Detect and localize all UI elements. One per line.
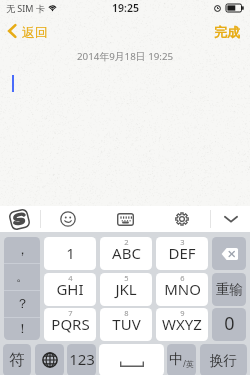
button[interactable]: [99, 344, 164, 375]
button[interactable]: 1: [44, 237, 96, 270]
button[interactable]: Sogou input method: [5, 206, 33, 232]
staticText: ！: [16, 320, 29, 336]
staticText: /英: [183, 358, 194, 369]
button[interactable]: 完成: [204, 23, 250, 39]
staticText: TUV: [112, 314, 141, 334]
button[interactable]: 。: [4, 264, 40, 290]
button[interactable]: Settings: [170, 207, 194, 231]
button[interactable]: 重输: [212, 273, 246, 306]
button[interactable]: 3: [156, 237, 208, 270]
button[interactable]: 中: [167, 344, 196, 375]
button[interactable]: ，: [4, 237, 40, 263]
button[interactable]: 0: [212, 308, 246, 341]
button[interactable]: Hide keyboard: [219, 207, 243, 231]
button[interactable]: 5: [100, 273, 152, 306]
staticText: 0: [224, 311, 235, 336]
staticText: 3: [180, 237, 185, 247]
staticText: 无 SIM 卡: [6, 2, 45, 14]
staticText: DEF: [168, 243, 196, 263]
staticText: 7: [68, 308, 73, 318]
button[interactable]: 7: [44, 308, 96, 341]
staticText: ，: [16, 241, 29, 257]
button[interactable]: Delete: [212, 237, 246, 270]
button[interactable]: 符: [3, 344, 31, 375]
button[interactable]: 123: [67, 344, 96, 375]
staticText: 2014年9月18日 19:25: [77, 50, 174, 63]
staticText: 完成: [214, 24, 240, 40]
button[interactable]: Switch language: [35, 344, 64, 375]
staticText: 5: [124, 273, 129, 283]
button[interactable]: 换行: [200, 344, 247, 375]
button[interactable]: 4: [44, 273, 96, 306]
button[interactable]: 返回: [0, 23, 56, 39]
staticText: 19:25: [112, 1, 139, 15]
staticText: PQRS: [51, 314, 90, 334]
staticText: 返回: [22, 24, 48, 40]
staticText: GHI: [56, 279, 84, 299]
staticText: MNO: [164, 279, 201, 299]
staticText: 符: [9, 350, 25, 370]
staticText: 2: [124, 237, 129, 247]
staticText: 1: [66, 243, 75, 263]
button[interactable]: 8: [100, 308, 152, 341]
staticText: 6: [180, 273, 185, 283]
staticText: 中: [169, 351, 183, 369]
button[interactable]: Emoji: [56, 207, 80, 231]
button[interactable]: 9: [156, 308, 208, 341]
staticText: 。: [16, 268, 29, 284]
staticText: 换行: [210, 352, 237, 369]
other: Switch language: [42, 352, 58, 368]
staticText: 4: [68, 273, 73, 283]
staticText: 123: [69, 349, 95, 369]
button[interactable]: 2: [100, 237, 152, 270]
button[interactable]: Keyboard: [113, 207, 137, 231]
staticText: ABC: [112, 243, 141, 263]
staticText: ？: [16, 295, 29, 311]
button[interactable]: 6: [156, 273, 208, 306]
staticText: WXYZ: [162, 314, 202, 334]
staticText: JKL: [115, 279, 137, 299]
staticText: 重输: [216, 281, 243, 298]
button[interactable]: ！: [4, 318, 40, 340]
staticText: 8: [124, 308, 129, 318]
staticText: 9: [180, 308, 185, 318]
button[interactable]: ？: [4, 291, 40, 317]
